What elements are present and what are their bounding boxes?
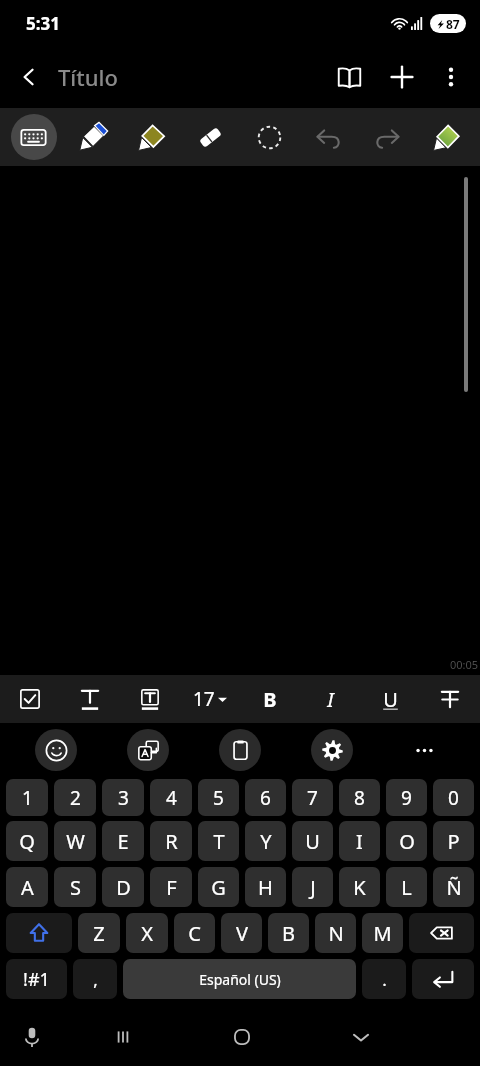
button[interactable]: C (174, 913, 215, 953)
staticText: D (116, 874, 131, 901)
button[interactable]: Eraser (181, 108, 240, 166)
staticText: Y (260, 828, 272, 855)
button[interactable]: Undo (299, 108, 358, 166)
staticText: 8 (354, 785, 365, 811)
button[interactable]: Lasso select (240, 108, 299, 166)
button[interactable]: !#1 (6, 959, 67, 999)
button[interactable]: Español (US) (123, 959, 356, 999)
button[interactable]: U (360, 675, 420, 723)
staticText: 6 (260, 785, 271, 811)
button[interactable]: F (150, 867, 192, 907)
button[interactable]: B (240, 675, 300, 723)
button[interactable]: 9 (386, 779, 427, 816)
staticText: H (258, 874, 273, 901)
button[interactable]: Text style (60, 675, 120, 723)
button[interactable]: J (292, 867, 333, 907)
button[interactable]: Home (182, 1008, 301, 1066)
staticText: V (236, 920, 248, 947)
button[interactable]: Highlighter (122, 108, 181, 166)
button[interactable]: V (221, 913, 262, 953)
button[interactable]: A (6, 867, 48, 907)
button[interactable]: Recents (64, 1008, 182, 1066)
button[interactable]: I (300, 675, 360, 723)
button[interactable]: Backspace (409, 913, 474, 953)
button[interactable]: Translate (102, 723, 194, 777)
button[interactable]: 7 (292, 779, 333, 816)
button[interactable]: Settings (286, 723, 378, 777)
button[interactable]: 8 (339, 779, 380, 816)
button[interactable]: Checklist (0, 675, 60, 723)
button[interactable]: Hide keyboard (301, 1008, 420, 1066)
staticText: F (166, 874, 177, 901)
button[interactable]: 1 (6, 779, 48, 816)
button[interactable]: Strikethrough (420, 675, 480, 723)
button[interactable]: G (198, 867, 239, 907)
staticText: 2 (70, 785, 81, 811)
staticText: 9 (401, 785, 412, 811)
button[interactable]: Keyboard (4, 108, 63, 166)
button[interactable]: L (386, 867, 427, 907)
staticText: W (66, 828, 85, 855)
button[interactable]: 0 (433, 779, 474, 816)
button[interactable]: K (339, 867, 380, 907)
button[interactable]: O (386, 821, 427, 861)
staticText: L (401, 874, 412, 901)
button[interactable]: Enter (412, 959, 474, 999)
button[interactable]: Clipboard (194, 723, 286, 777)
staticText: O (399, 828, 415, 855)
button[interactable]: More options (428, 54, 474, 100)
button[interactable]: U (292, 821, 333, 861)
button[interactable]: Emoji (10, 723, 102, 777)
button[interactable]: S (54, 867, 96, 907)
button[interactable]: 4 (150, 779, 192, 816)
button[interactable]: Q (6, 821, 48, 861)
button[interactable]: 2 (54, 779, 96, 816)
button[interactable]: M (362, 913, 403, 953)
button[interactable]: Text box (120, 675, 180, 723)
button[interactable]: 5 (198, 779, 239, 816)
button[interactable]: 6 (245, 779, 286, 816)
staticText: G (211, 874, 226, 901)
staticText: B (282, 920, 295, 947)
button[interactable]: , (73, 959, 117, 999)
staticText: S (70, 874, 81, 901)
button[interactable]: E (102, 821, 144, 861)
staticText: R (165, 828, 178, 855)
button[interactable]: P (433, 821, 474, 861)
staticText: 4 (166, 785, 177, 811)
staticText: 7 (307, 785, 318, 811)
button[interactable]: Reading view (322, 50, 376, 104)
button[interactable]: X (126, 913, 168, 953)
button[interactable]: 17 (180, 675, 240, 723)
staticText: A (21, 874, 34, 901)
staticText: 00:05 (450, 657, 479, 672)
button[interactable]: More (378, 723, 470, 777)
staticText: Español (US) (199, 970, 281, 989)
button[interactable]: Back (0, 46, 58, 108)
button[interactable]: Voice input (0, 1008, 64, 1066)
button[interactable]: Z (78, 913, 120, 953)
staticText: N (328, 920, 344, 947)
button[interactable]: Pen settings (417, 108, 476, 166)
button[interactable]: 3 (102, 779, 144, 816)
button[interactable]: . (362, 959, 406, 999)
button[interactable]: H (245, 867, 286, 907)
staticText: C (188, 920, 201, 947)
button[interactable]: B (268, 913, 309, 953)
button[interactable]: N (315, 913, 356, 953)
button[interactable]: Y (245, 821, 286, 861)
button[interactable]: Redo (358, 108, 417, 166)
staticText: 3 (118, 785, 129, 811)
button[interactable]: Pen (63, 108, 122, 166)
staticText: T (213, 828, 225, 855)
button[interactable]: T (198, 821, 239, 861)
button[interactable]: Ñ (433, 867, 474, 907)
button[interactable]: Add (376, 51, 428, 103)
button[interactable]: R (150, 821, 192, 861)
button[interactable]: D (102, 867, 144, 907)
button[interactable]: W (54, 821, 96, 861)
staticText: I (356, 828, 363, 855)
button[interactable]: Shift (6, 913, 72, 953)
staticText: 87 (446, 16, 460, 32)
button[interactable]: I (339, 821, 380, 861)
